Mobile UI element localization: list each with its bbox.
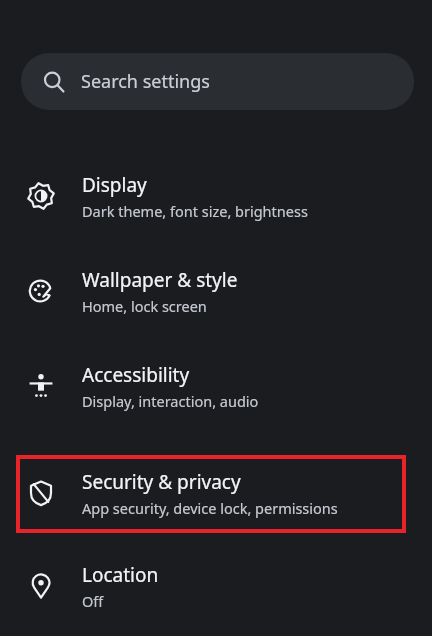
button[interactable]: Display — [0, 165, 432, 227]
staticText: Security & privacy — [82, 469, 241, 495]
button[interactable]: Security & privacy — [0, 462, 432, 524]
button[interactable]: Location — [0, 555, 432, 617]
button[interactable]: Wallpaper & style — [0, 260, 432, 322]
staticText: Dark theme, font size, brightness — [82, 201, 308, 221]
staticText: Accessibility — [82, 362, 190, 388]
staticText: Display — [82, 172, 147, 198]
button[interactable]: Search settings — [21, 53, 414, 110]
staticText: Home, lock screen — [82, 296, 207, 316]
staticText: Location — [82, 562, 159, 588]
staticText: Wallpaper & style — [82, 267, 238, 293]
staticText: Search settings — [81, 69, 210, 94]
staticText: Display, interaction, audio — [82, 391, 259, 411]
staticText: App security, device lock, permissions — [82, 498, 338, 518]
button[interactable]: Accessibility — [0, 355, 432, 417]
staticText: Off — [82, 591, 104, 611]
